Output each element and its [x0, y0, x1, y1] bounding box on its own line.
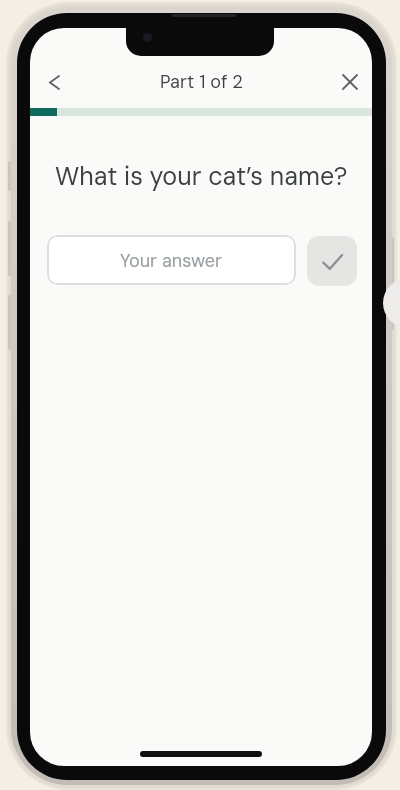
button[interactable]: [307, 236, 357, 286]
button[interactable]: [38, 66, 70, 98]
staticText: Your answer: [120, 249, 223, 272]
staticText: What is your cat’s name?: [55, 160, 348, 193]
button[interactable]: [334, 66, 366, 98]
button[interactable]: Your answer: [47, 235, 296, 285]
staticText: Part 1 of 2: [160, 70, 243, 93]
